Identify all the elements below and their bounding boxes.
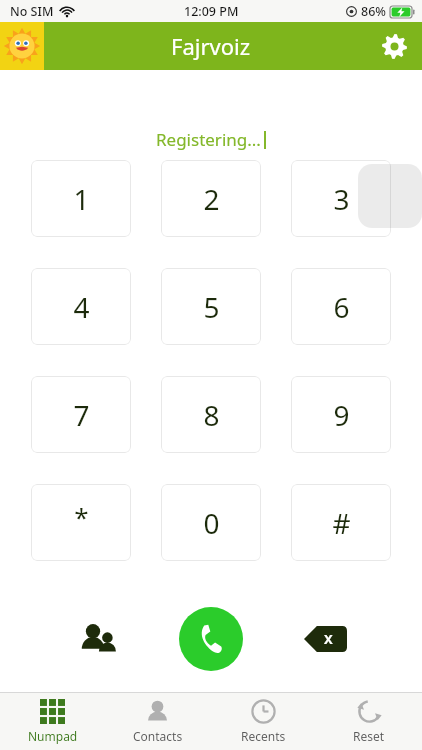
button[interactable]: 7	[31, 376, 131, 453]
button[interactable]: 0	[161, 484, 261, 561]
staticText: Contacts	[133, 728, 183, 744]
button[interactable]: Contacts	[76, 614, 126, 664]
staticText: 86%	[361, 3, 386, 20]
button[interactable]: Call	[179, 607, 243, 671]
staticText: 9	[333, 396, 350, 434]
button[interactable]: Contacts	[105, 693, 210, 750]
staticText: *	[74, 499, 89, 534]
staticText: 2	[203, 180, 220, 218]
staticText: 1	[73, 180, 90, 218]
button[interactable]: #	[291, 484, 391, 561]
button[interactable]: 4	[31, 268, 131, 345]
button[interactable]: 5	[161, 268, 261, 345]
staticText: Registering...	[156, 128, 261, 151]
staticText: 8	[203, 396, 220, 434]
button[interactable]: 6	[291, 268, 391, 345]
staticText: 6	[333, 288, 350, 326]
button[interactable]: 2	[161, 160, 261, 237]
staticText: 3	[333, 180, 350, 218]
button[interactable]: *	[31, 484, 131, 561]
staticText: Recents	[241, 728, 286, 744]
button[interactable]: 8	[161, 376, 261, 453]
staticText: Numpad	[28, 728, 78, 744]
button[interactable]: Numpad	[0, 693, 105, 750]
button[interactable]	[0, 22, 44, 70]
button[interactable]: Reset	[316, 693, 422, 750]
staticText: Reset	[353, 728, 385, 744]
staticText: Fajrvoiz	[171, 31, 251, 61]
staticText: 12:09 PM	[184, 3, 239, 20]
staticText: #	[332, 504, 351, 542]
staticText: 4	[73, 288, 90, 326]
staticText: 7	[73, 396, 90, 434]
button[interactable]: 1	[31, 160, 131, 237]
button[interactable]: 9	[291, 376, 391, 453]
button[interactable]: Settings	[374, 26, 414, 66]
button[interactable]: 3	[291, 160, 391, 237]
button[interactable]: Backspace	[300, 614, 350, 664]
button[interactable]: Recents	[210, 693, 316, 750]
staticText: X	[324, 630, 333, 648]
staticText: 5	[203, 288, 220, 326]
staticText: No SIM	[10, 3, 54, 20]
staticText: 0	[203, 504, 220, 542]
